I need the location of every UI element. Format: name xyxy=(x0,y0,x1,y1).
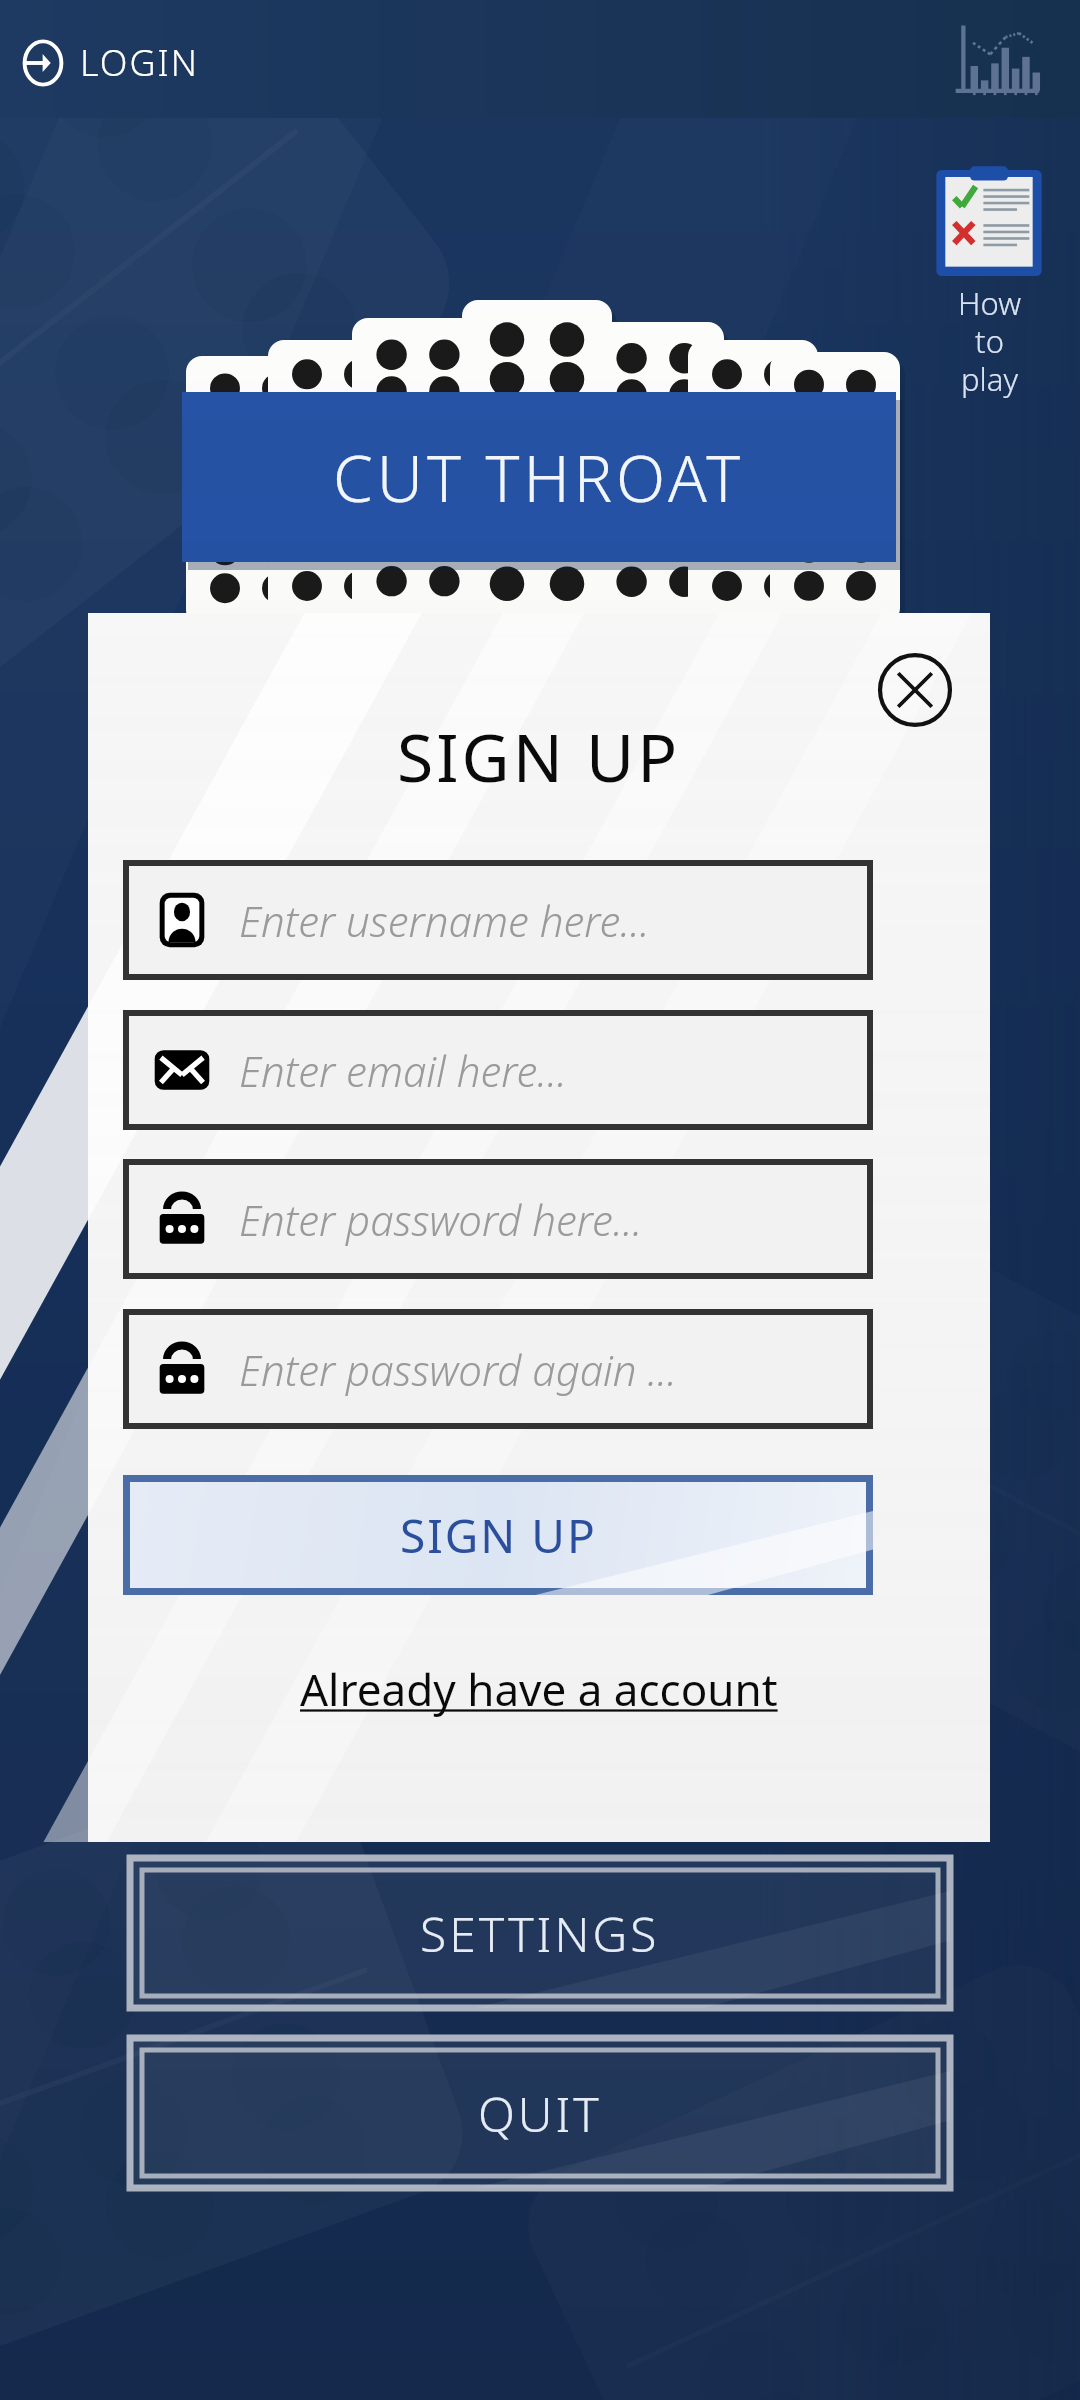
staticText: CUT THROAT xyxy=(333,434,745,521)
button[interactable]: SIGN UP xyxy=(123,1475,873,1595)
button[interactable]: How to play xyxy=(922,160,1056,400)
button[interactable]: LOGIN xyxy=(14,30,205,95)
button[interactable]: Enter password here... xyxy=(129,1165,867,1273)
staticText: Enter username here... xyxy=(239,892,650,949)
staticText: SIGN UP xyxy=(400,1504,597,1567)
staticText: Enter password here... xyxy=(239,1191,643,1248)
staticText: QUIT xyxy=(478,2081,602,2146)
button[interactable]: Statistics xyxy=(948,14,1044,110)
button[interactable]: Enter username here... xyxy=(129,866,867,974)
staticText: SETTINGS xyxy=(420,1901,660,1966)
staticText: LOGIN xyxy=(80,38,199,87)
button[interactable]: SETTINGS xyxy=(130,1858,950,2008)
button[interactable]: Enter password again ... xyxy=(129,1315,867,1423)
staticText: Enter email here... xyxy=(239,1042,567,1099)
staticText: Enter password again ... xyxy=(239,1341,677,1398)
staticText: How to play xyxy=(958,282,1021,400)
button[interactable]: Already have a account xyxy=(294,1653,784,1725)
button[interactable]: CUT THROAT xyxy=(182,392,896,562)
button[interactable]: Close xyxy=(877,652,953,728)
button[interactable]: QUIT xyxy=(130,2038,950,2188)
button[interactable]: Enter email here... xyxy=(129,1016,867,1124)
staticText: SIGN UP xyxy=(397,711,681,801)
